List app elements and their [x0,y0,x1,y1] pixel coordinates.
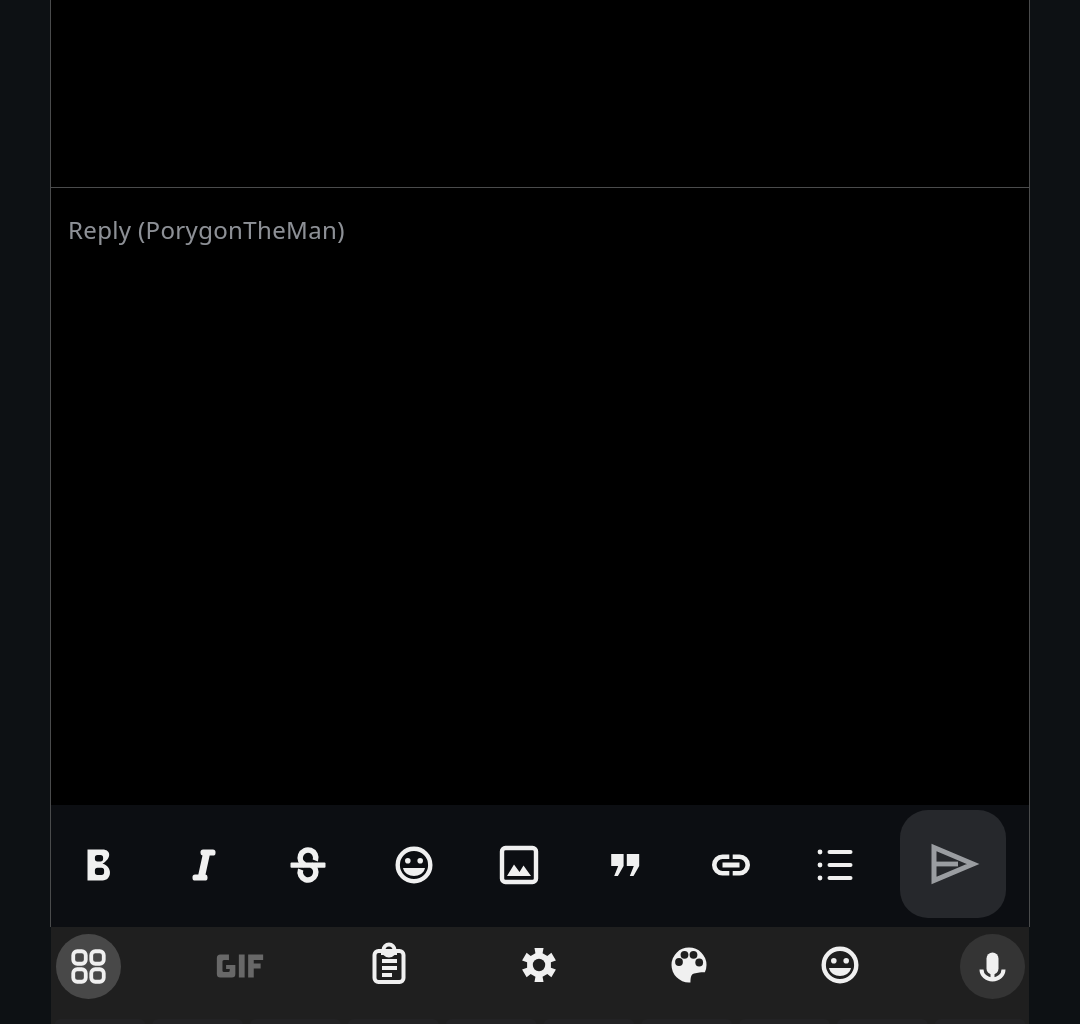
staticText: Reply (PorygonTheMan) [68,213,345,246]
button[interactable]: Quote [585,825,665,905]
button[interactable]: Send [900,810,1006,918]
button[interactable]: Theme [654,930,724,1000]
button[interactable]: GIF [204,930,276,1002]
button[interactable]: Emoji [805,930,875,1000]
button[interactable]: Image [479,825,559,905]
button[interactable]: Link [691,825,771,905]
button[interactable]: Settings [504,930,574,1000]
button[interactable]: Bold [59,825,139,905]
button[interactable]: Reply (PorygonTheMan) [51,188,1029,805]
button[interactable]: Emoji [374,825,454,905]
button[interactable]: Italic [164,825,244,905]
button[interactable]: Strikethrough [268,825,348,905]
button[interactable]: Apps [56,934,121,999]
button[interactable]: Bullet list [795,825,875,905]
button[interactable]: Clipboard [354,930,424,1000]
button[interactable]: Voice input [960,934,1025,999]
